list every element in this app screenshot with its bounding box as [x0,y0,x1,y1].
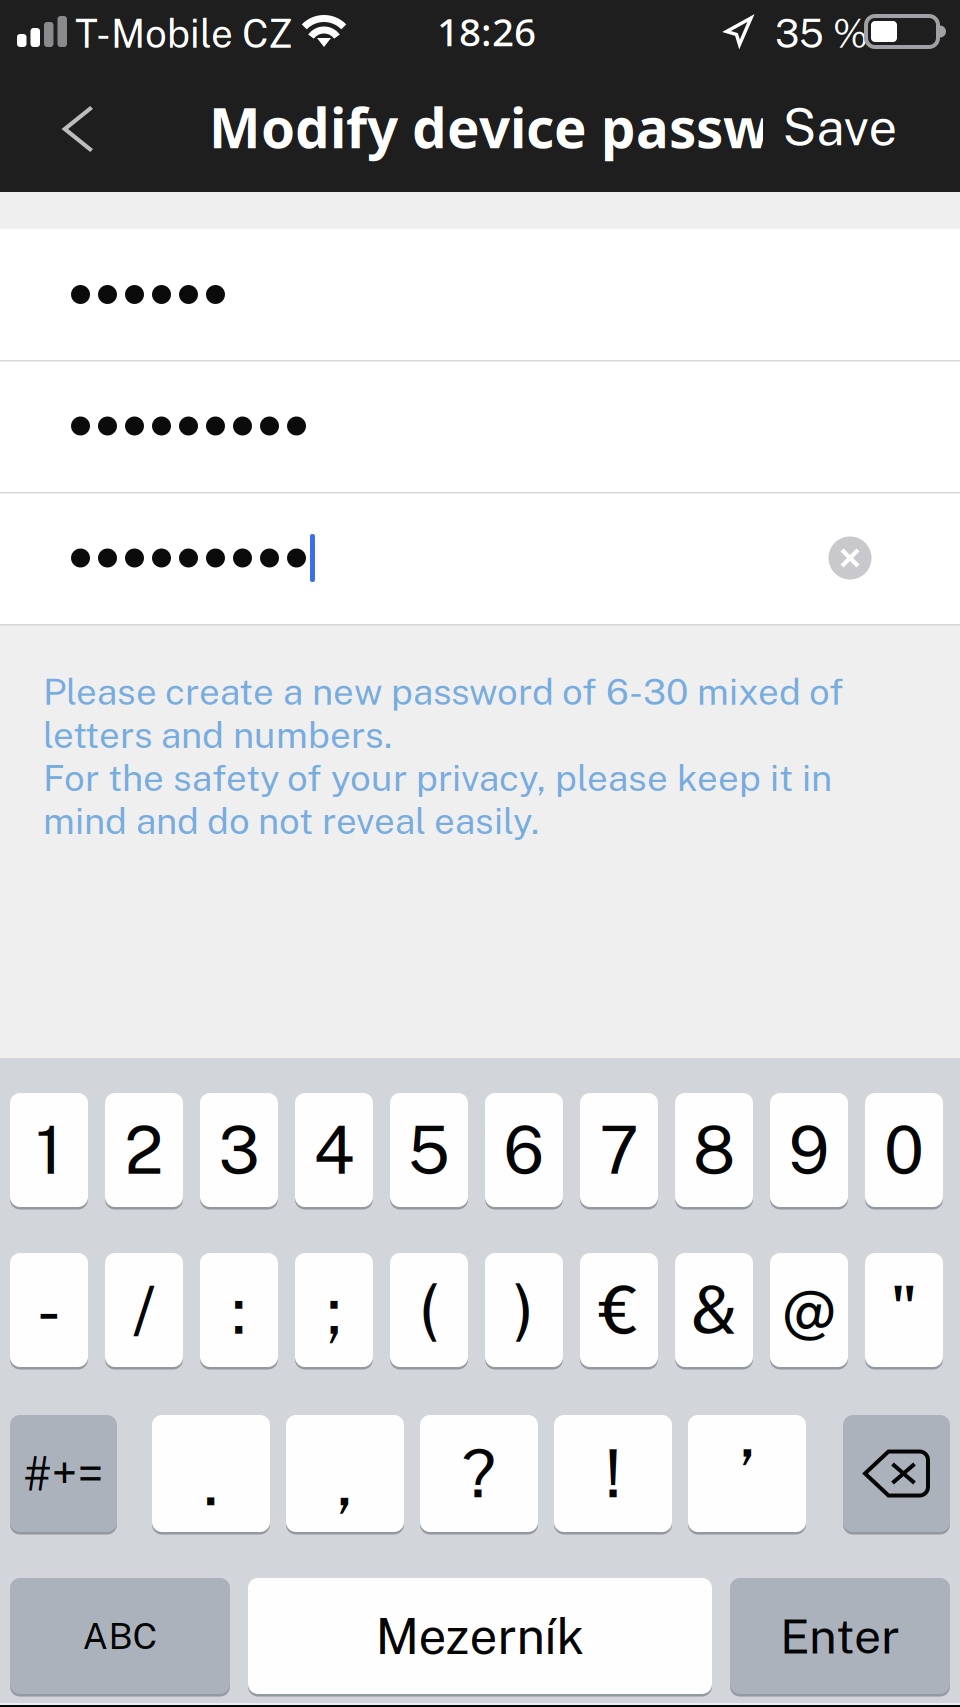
staticText: 2 [124,1112,163,1188]
button[interactable]: 3 [200,1093,278,1210]
staticText: 35 % [775,11,868,56]
staticText: letters and numbers. [43,713,392,756]
button[interactable]: ABC [10,1578,230,1697]
staticText: mind and do not reveal easily. [43,799,539,842]
button[interactable]: Delete [843,1415,950,1535]
staticText: ABC [82,1615,157,1657]
button[interactable]: 8 [675,1093,753,1210]
button[interactable]: " [865,1253,943,1370]
staticText: ! [605,1435,621,1512]
button[interactable] [0,360,960,492]
button[interactable]: & [675,1253,753,1370]
button[interactable]: 0 [865,1093,943,1210]
button[interactable]: 4 [295,1093,373,1210]
staticText: " [890,1272,918,1348]
button[interactable]: ’ [688,1415,806,1535]
button[interactable]: 1 [10,1093,88,1210]
button[interactable]: : [200,1253,278,1370]
button[interactable]: 2 [105,1093,183,1210]
staticText: 7 [599,1112,638,1188]
staticText: T-Mobile CZ [75,11,293,56]
button[interactable]: 7 [580,1093,658,1210]
staticText: 3 [218,1112,259,1188]
staticText: Enter [780,1608,900,1664]
button[interactable]: . [152,1415,270,1535]
button[interactable]: 6 [485,1093,563,1210]
button[interactable] [0,492,960,624]
button[interactable]: @ [770,1253,848,1370]
button[interactable] [0,229,960,360]
staticText: : [231,1272,246,1348]
staticText: Please create a new password of 6-30 mix… [43,670,844,713]
button[interactable]: ( [390,1253,468,1370]
staticText: ; [326,1272,342,1348]
staticText: 18:26 [437,5,536,58]
staticText: 4 [313,1112,354,1188]
staticText: Mezerník [375,1607,584,1665]
button[interactable]: ) [485,1253,563,1370]
button[interactable]: € [580,1253,658,1370]
staticText: ? [462,1435,496,1512]
button[interactable]: Save [765,64,915,190]
staticText: € [599,1272,638,1348]
staticText: For the safety of your privacy, please k… [43,756,832,799]
button[interactable]: Back [29,66,125,192]
button[interactable]: #+= [10,1415,117,1535]
staticText: Save [782,97,897,157]
button[interactable]: 9 [770,1093,848,1210]
staticText: 5 [408,1112,450,1188]
button[interactable]: Enter [730,1578,950,1697]
staticText: 0 [884,1112,924,1188]
staticText: / [132,1272,155,1348]
button[interactable]: ; [295,1253,373,1370]
staticText: 1 [35,1112,62,1188]
staticText: ) [514,1272,534,1348]
staticText: & [691,1272,737,1348]
staticText: 6 [503,1112,544,1188]
staticText: @ [782,1272,836,1348]
button[interactable]: ? [420,1415,538,1535]
staticText: 8 [693,1112,735,1188]
staticText: . [203,1443,218,1520]
button[interactable]: Mezerník [248,1578,712,1697]
staticText: #+= [23,1446,103,1501]
button[interactable]: , [286,1415,404,1535]
button[interactable]: Clear text [814,522,886,594]
staticText: , [337,1443,353,1520]
staticText: ( [419,1272,439,1348]
button[interactable]: 5 [390,1093,468,1210]
staticText: Modify device password [209,90,862,164]
staticText: ’ [739,1435,754,1512]
button[interactable]: / [105,1253,183,1370]
staticText: 9 [788,1112,829,1188]
button[interactable]: - [10,1253,88,1370]
button[interactable]: ! [554,1415,672,1535]
staticText: - [36,1272,61,1348]
